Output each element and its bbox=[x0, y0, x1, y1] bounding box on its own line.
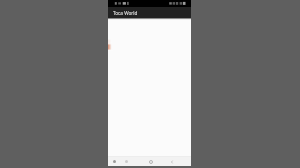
button[interactable]: Home bbox=[146, 157, 156, 167]
button[interactable]: Back bbox=[167, 157, 177, 167]
staticText: Toca World bbox=[113, 10, 138, 16]
button[interactable]: Switch input method bbox=[123, 158, 130, 165]
button[interactable]: Toca World bbox=[108, 7, 191, 19]
button[interactable]: Notification bbox=[111, 158, 118, 165]
